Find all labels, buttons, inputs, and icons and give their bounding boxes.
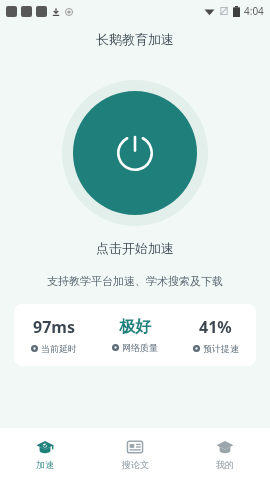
button[interactable]: 极好: [94, 317, 175, 353]
button[interactable]: 搜论文: [90, 428, 180, 480]
staticText: 极好: [119, 317, 151, 337]
button[interactable]: 加速: [0, 428, 90, 480]
staticText: 当前延时: [41, 343, 77, 354]
staticText: 长鹅教育加速: [96, 31, 174, 47]
button[interactable]: 点击开始加速: [62, 80, 208, 226]
staticText: 我的: [216, 459, 234, 470]
button[interactable]: 41%: [175, 316, 256, 354]
staticText: 4:04: [244, 4, 264, 18]
button[interactable]: 我的: [180, 428, 270, 480]
staticText: 加速: [36, 459, 54, 470]
staticText: 97ms: [33, 316, 75, 338]
staticText: 支持教学平台加速、学术搜索及下载: [0, 274, 270, 288]
staticText: 预计提速: [203, 343, 239, 354]
button[interactable]: 97ms: [14, 316, 94, 354]
staticText: 41%: [199, 316, 232, 338]
staticText: 搜论文: [122, 459, 149, 470]
staticText: 网络质量: [122, 342, 158, 353]
staticText: 点击开始加速: [96, 240, 174, 256]
